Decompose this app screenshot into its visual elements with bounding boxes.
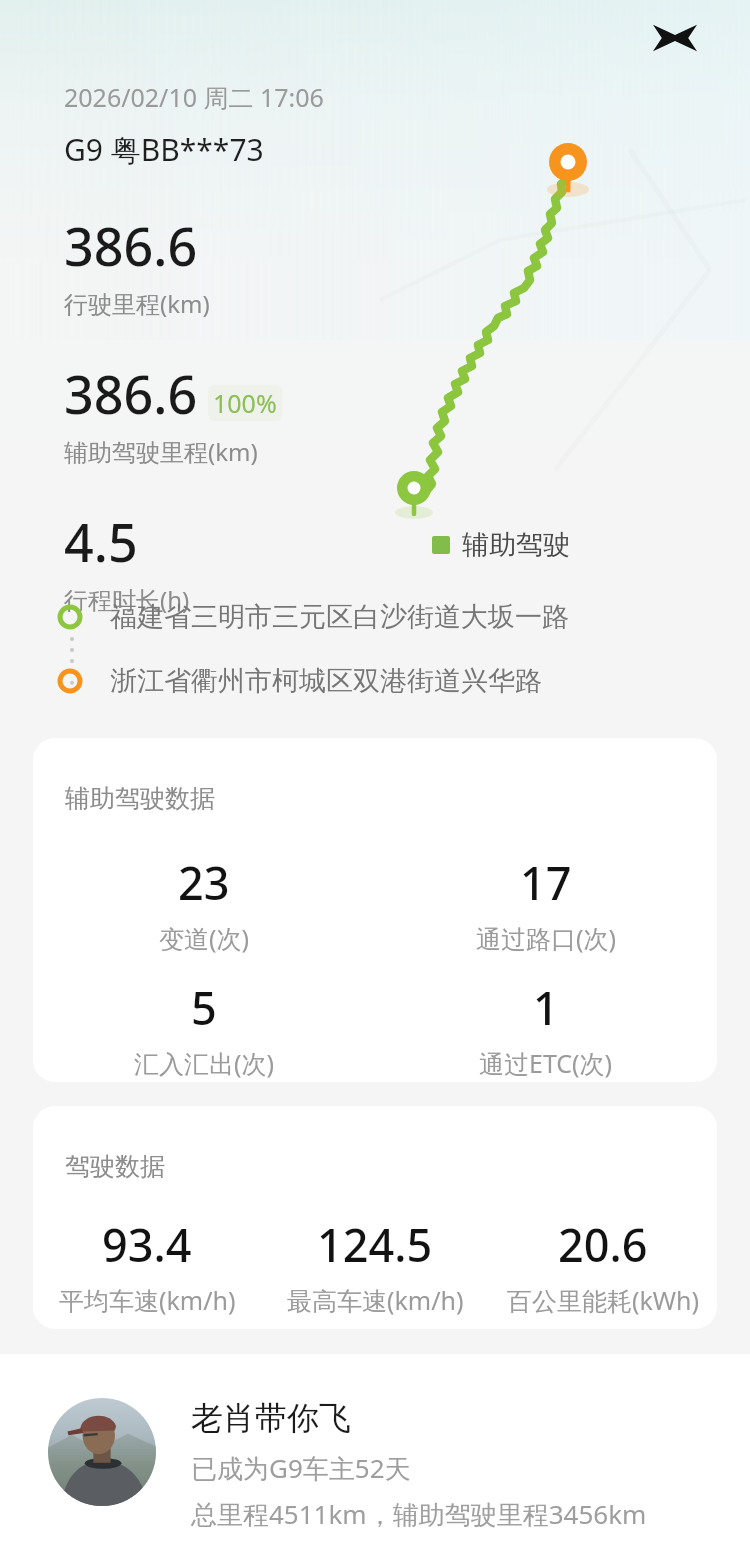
staticText: G9 粤BB***73 — [64, 129, 264, 170]
staticText: 5 — [191, 977, 217, 1038]
staticText: 2026/02/10 周二 17:06 — [64, 80, 324, 114]
staticText: 386.6 — [64, 210, 198, 281]
staticText: 辅助驾驶数据 — [65, 783, 215, 814]
staticText: 386.6 — [64, 358, 198, 429]
staticText: 汇入汇出(次) — [134, 1046, 275, 1080]
button[interactable]: 23 — [33, 852, 375, 955]
button[interactable]: 老肖带你飞 — [0, 1354, 750, 1542]
staticText: 23 — [178, 852, 230, 913]
button[interactable]: 5 — [33, 977, 375, 1080]
staticText: 驾驶数据 — [65, 1151, 165, 1182]
staticText: 行程时长(h) — [64, 583, 190, 616]
staticText: 最高车速(km/h) — [287, 1283, 464, 1317]
staticText: 行驶里程(km) — [64, 287, 210, 320]
staticText: 变道(次) — [159, 921, 250, 955]
button[interactable]: 124.5 — [261, 1214, 489, 1317]
staticText: 平均车速(km/h) — [59, 1283, 236, 1317]
staticText: 124.5 — [317, 1214, 433, 1275]
staticText: 辅助驾驶 — [462, 528, 570, 562]
staticText: 辅助驾驶里程(km) — [64, 435, 258, 468]
staticText: 浙江省衢州市柯城区双港街道兴华路 — [110, 664, 542, 698]
staticText: 福建省三明市三元区白沙街道大坂一路 — [110, 600, 569, 634]
staticText: 20.6 — [558, 1214, 648, 1275]
button[interactable]: XPeng logo — [645, 8, 705, 68]
staticText: 通过ETC(次) — [479, 1046, 613, 1080]
staticText: 通过路口(次) — [476, 921, 617, 955]
staticText: 百公里能耗(kWh) — [507, 1283, 700, 1317]
button[interactable]: 93.4 — [33, 1214, 261, 1317]
staticText: 93.4 — [102, 1214, 192, 1275]
staticText: 4.5 — [64, 506, 138, 577]
staticText: 1 — [533, 977, 559, 1038]
button[interactable]: 1 — [375, 977, 717, 1080]
staticText: 已成为G9车主52天 — [191, 1450, 411, 1486]
button[interactable]: 17 — [375, 852, 717, 955]
button[interactable]: 20.6 — [489, 1214, 717, 1317]
button[interactable]: 辅助驾驶数据 — [33, 738, 717, 1082]
staticText: 100% — [213, 386, 277, 420]
staticText: 17 — [520, 852, 572, 913]
staticText: 老肖带你飞 — [191, 1398, 351, 1438]
staticText: 总里程4511km，辅助驾驶里程3456km — [191, 1496, 647, 1532]
button[interactable]: 驾驶数据 — [33, 1106, 717, 1329]
